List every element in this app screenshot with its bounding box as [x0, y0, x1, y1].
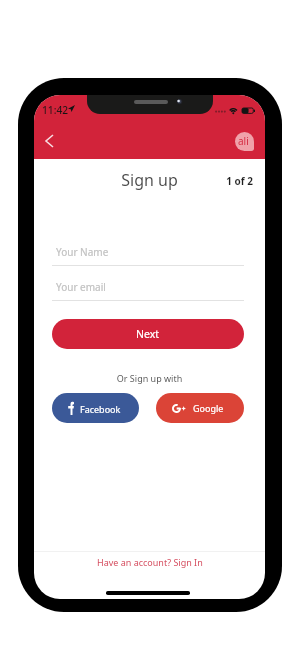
button[interactable]: Next — [52, 319, 244, 349]
staticText: Google — [193, 402, 224, 414]
staticText: Facebook — [80, 403, 121, 415]
button[interactable]: Have an account? Sign In — [34, 550, 265, 574]
button[interactable]: Google — [156, 393, 244, 423]
staticText: Next — [136, 327, 160, 341]
staticText: ali — [238, 134, 249, 148]
staticText: Your Name — [56, 245, 109, 259]
staticText: Or Sign up with — [34, 372, 265, 384]
button[interactable]: Back — [34, 125, 64, 157]
staticText: Have an account? Sign In — [97, 556, 203, 568]
staticText: 11:42 — [42, 103, 69, 117]
staticText: 1 of 2 — [223, 174, 253, 188]
button[interactable]: Facebook — [52, 393, 139, 423]
staticText: Your email — [56, 280, 106, 294]
button[interactable]: ali logo — [235, 132, 254, 151]
staticText: Sign up — [34, 169, 265, 191]
